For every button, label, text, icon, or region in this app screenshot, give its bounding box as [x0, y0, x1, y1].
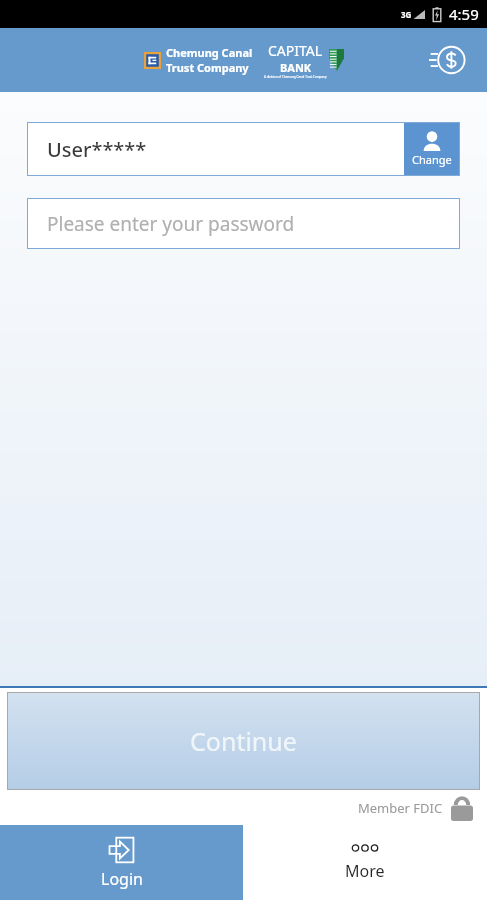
staticText: Trust Company: [166, 60, 249, 75]
staticText: Please enter your password: [47, 211, 295, 237]
button[interactable]: Change: [404, 122, 460, 176]
button[interactable]: Menu: [423, 38, 467, 82]
staticText: User*****: [47, 136, 147, 163]
staticText: Member FDIC: [358, 799, 443, 817]
staticText: Chemung Canal: [166, 45, 253, 60]
staticText: Change: [412, 152, 452, 167]
button[interactable]: User*****: [27, 122, 404, 176]
button[interactable]: Continue: [7, 692, 480, 790]
button[interactable]: Please enter your password: [27, 198, 460, 249]
button[interactable]: More: [243, 825, 487, 900]
staticText: A division of Chemung Canal Trust Compan…: [264, 75, 327, 79]
button[interactable]: Login: [0, 825, 243, 900]
staticText: 4:59: [449, 4, 479, 24]
staticText: BANK: [280, 60, 312, 75]
staticText: Continue: [190, 724, 297, 758]
staticText: More: [345, 860, 385, 882]
staticText: 3G: [401, 9, 412, 20]
staticText: Login: [101, 868, 143, 890]
staticText: CAPITAL: [268, 41, 323, 60]
